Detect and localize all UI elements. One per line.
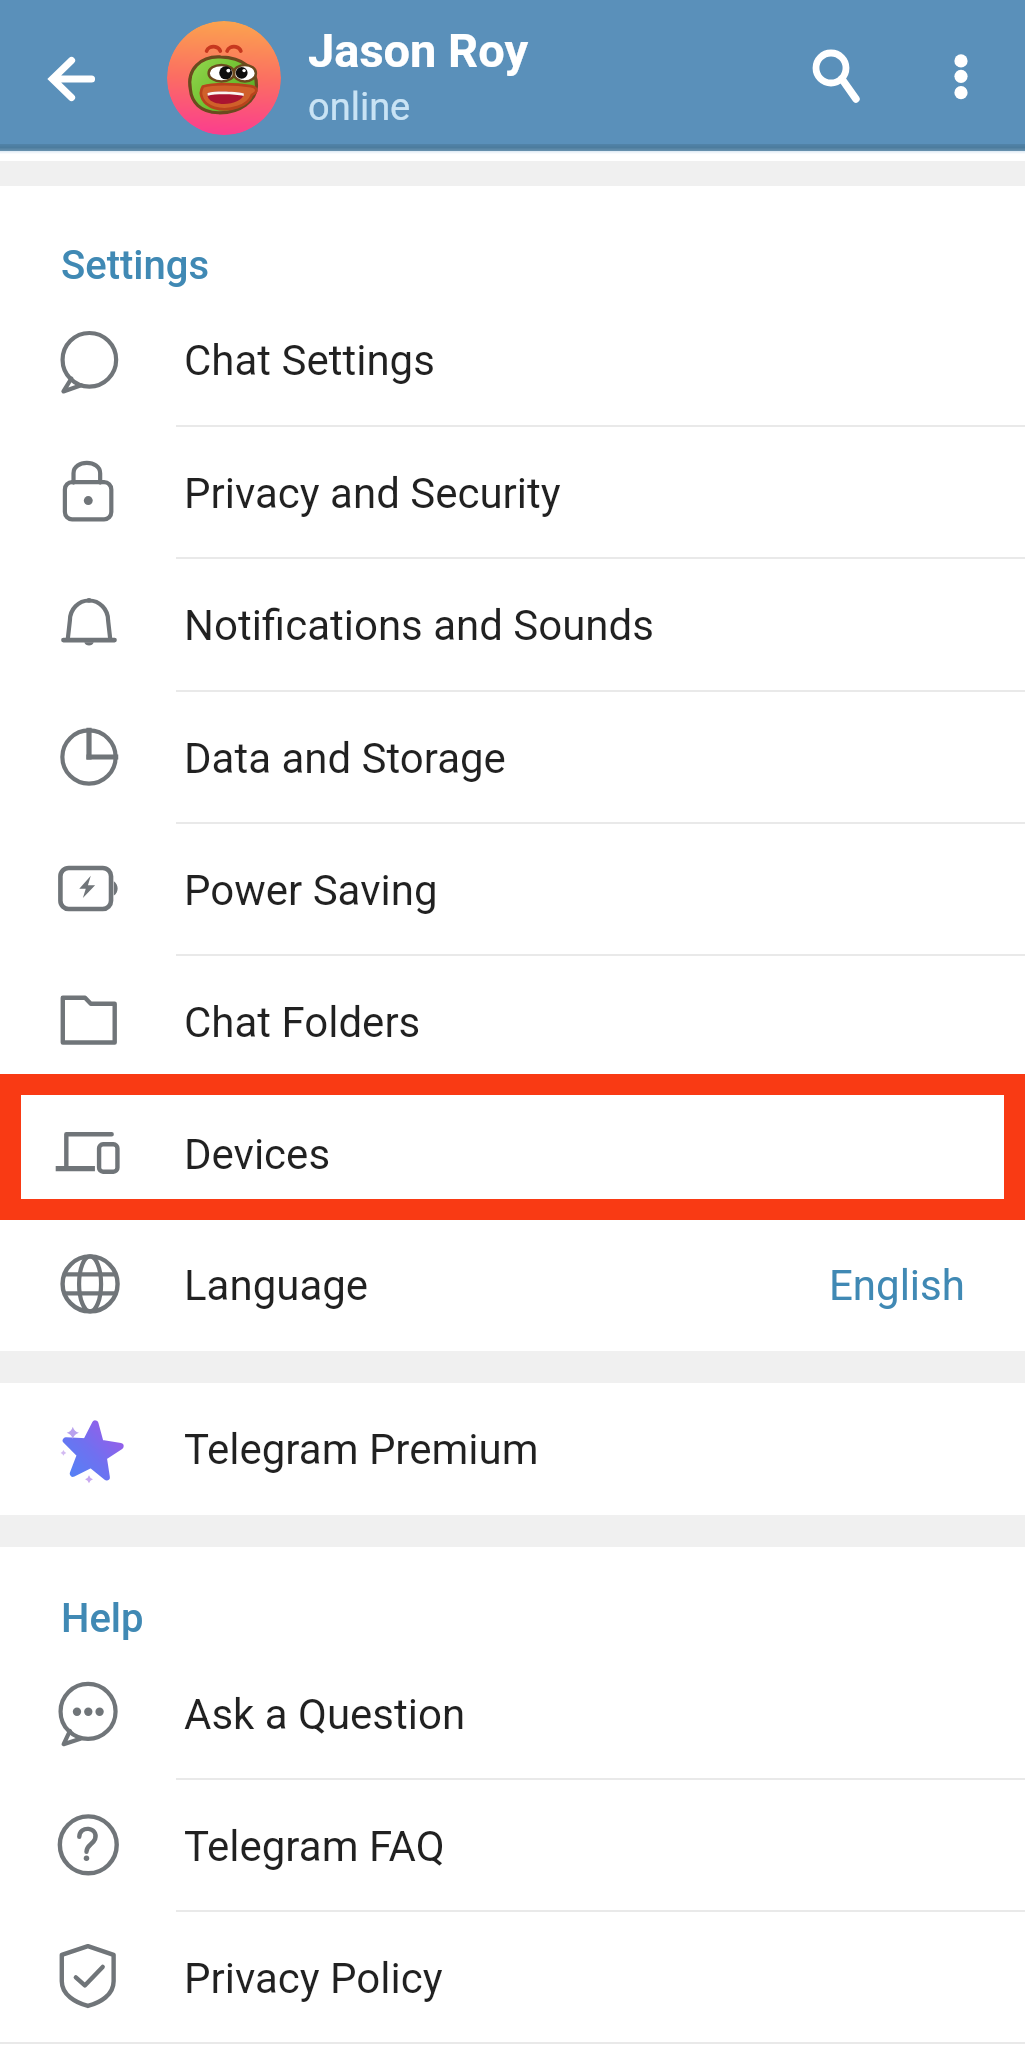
- staticText: English: [829, 1261, 965, 1310]
- button[interactable]: Search: [783, 27, 879, 123]
- button[interactable]: Telegram FAQ: [0, 1780, 1025, 1912]
- button[interactable]: Notifications and Sounds: [0, 559, 1025, 692]
- staticText: Chat Settings: [184, 336, 435, 385]
- button[interactable]: Privacy Policy: [0, 1912, 1025, 2044]
- staticText: Help: [61, 1595, 144, 1642]
- staticText: Data and Storage: [184, 734, 506, 783]
- staticText: Notifications and Sounds: [184, 601, 654, 650]
- staticText: Telegram FAQ: [184, 1822, 445, 1871]
- staticText: Devices: [184, 1130, 331, 1179]
- button[interactable]: Ask a Question: [0, 1649, 1025, 1780]
- staticText: online: [308, 85, 411, 130]
- button[interactable]: Chat Folders: [0, 956, 1025, 1088]
- staticText: Jason Roy: [308, 23, 529, 78]
- button[interactable]: Data and Storage: [0, 692, 1025, 824]
- button[interactable]: Chat Settings: [0, 294, 1025, 427]
- staticText: Power Saving: [184, 866, 438, 915]
- button[interactable]: Telegram Premium: [0, 1383, 1025, 1515]
- button[interactable]: Devices: [0, 1088, 1025, 1220]
- staticText: Telegram Premium: [184, 1425, 539, 1474]
- button[interactable]: Profile photo: [167, 21, 281, 135]
- staticText: Chat Folders: [184, 998, 421, 1047]
- button[interactable]: More options: [913, 29, 1009, 125]
- button[interactable]: Language: [0, 1220, 1025, 1351]
- staticText: Privacy and Security: [184, 469, 561, 518]
- button[interactable]: Power Saving: [0, 824, 1025, 956]
- button[interactable]: Back: [24, 32, 120, 128]
- staticText: Ask a Question: [184, 1690, 466, 1739]
- staticText: Settings: [61, 242, 210, 289]
- staticText: Language: [184, 1261, 369, 1310]
- button[interactable]: Privacy and Security: [0, 427, 1025, 559]
- staticText: Privacy Policy: [184, 1954, 443, 2003]
